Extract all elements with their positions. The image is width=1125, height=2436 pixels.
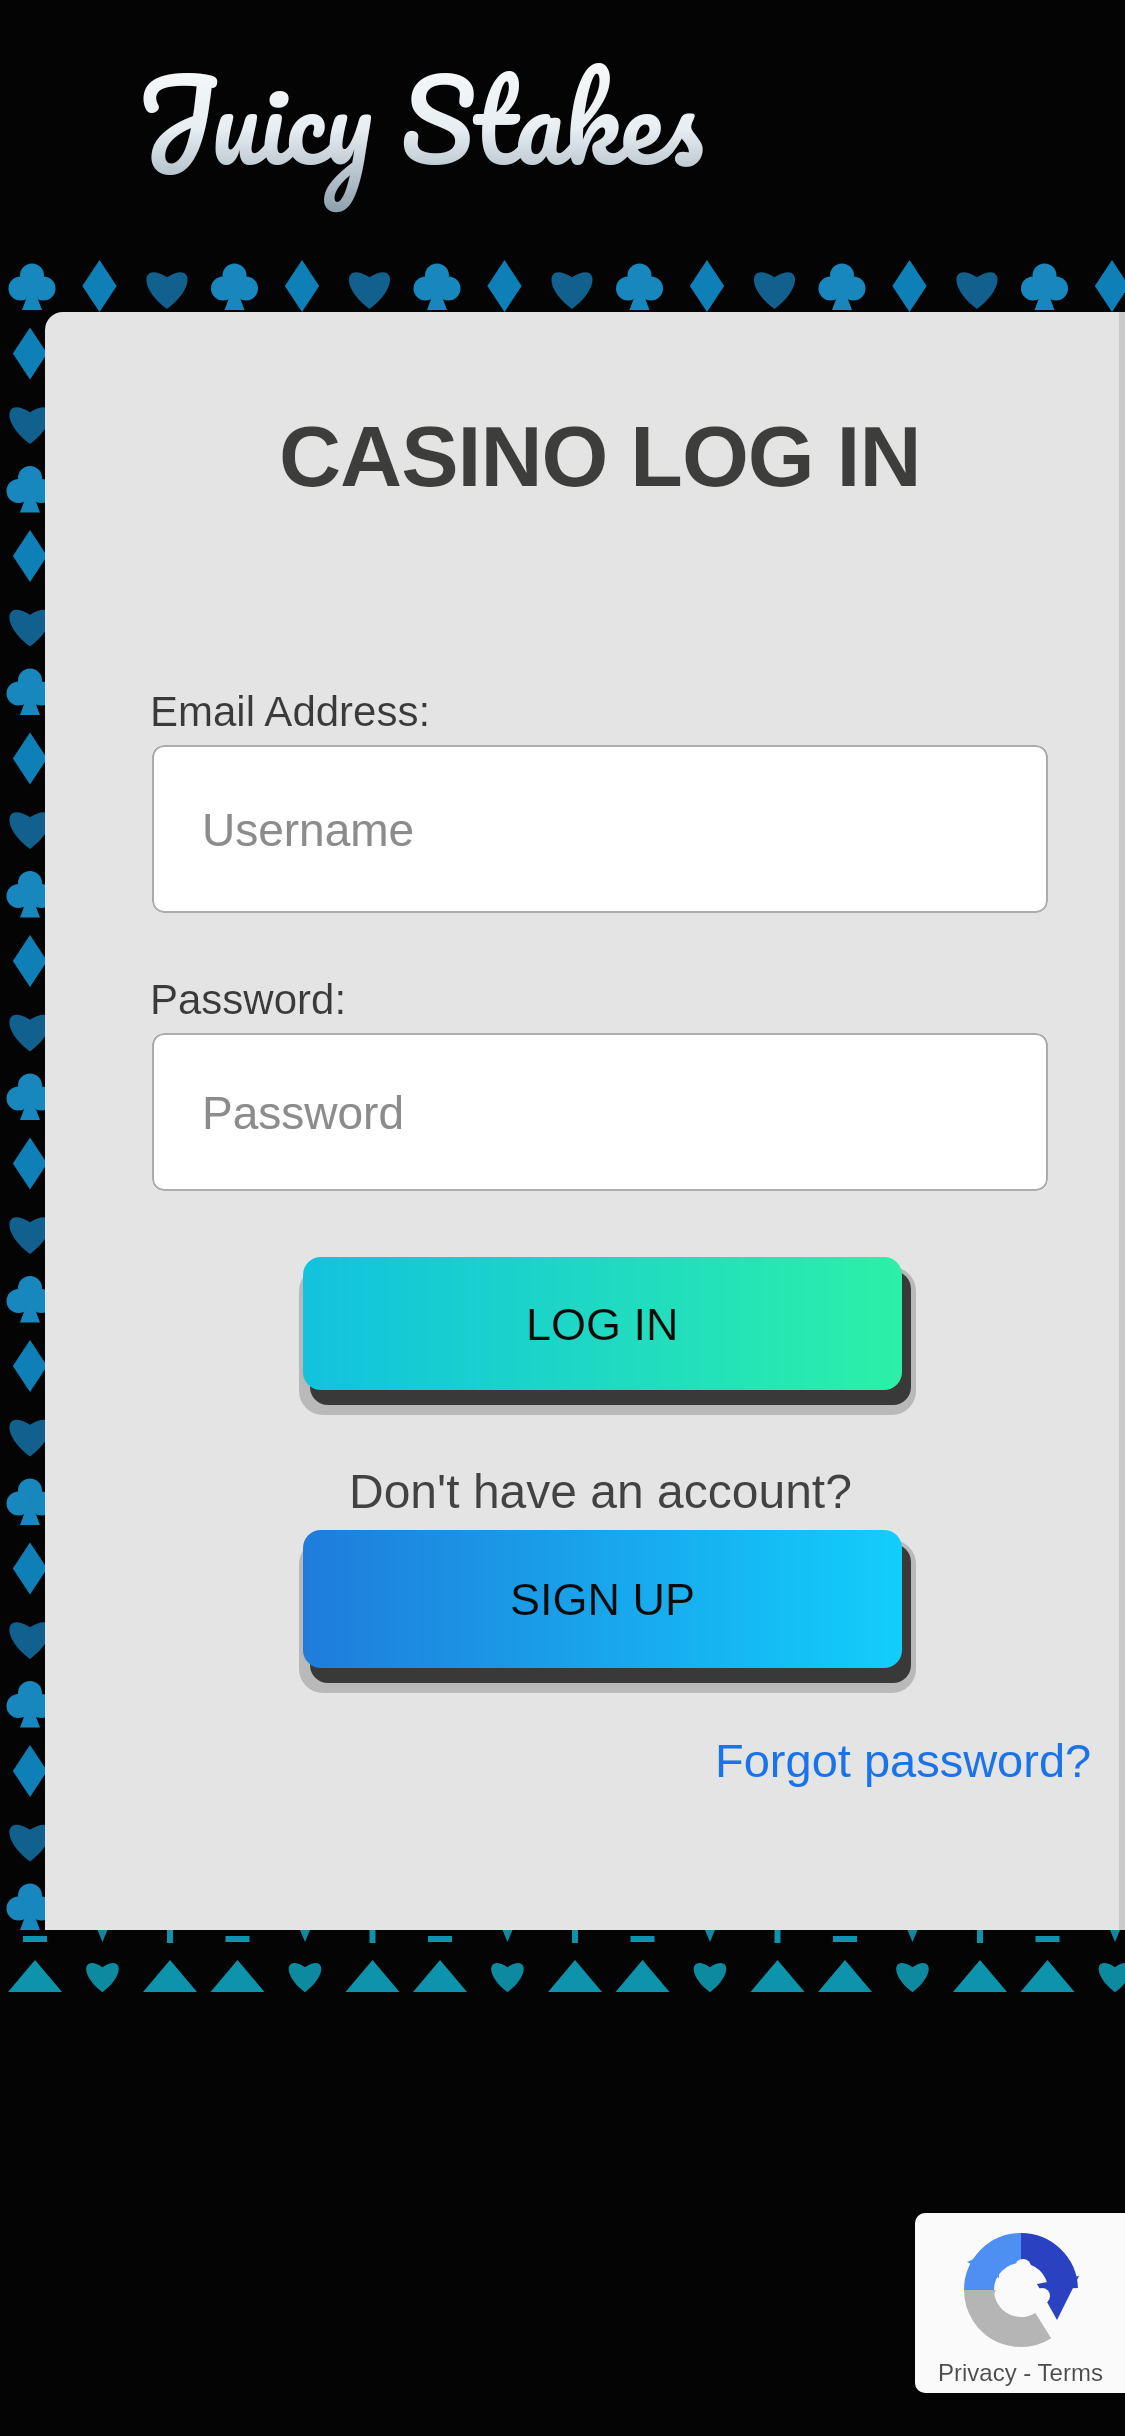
button[interactable]: Password <box>152 1033 1048 1191</box>
button[interactable]: Forgot password? <box>715 1734 1092 1787</box>
staticText: SIGN UP <box>510 1574 696 1624</box>
staticText: Don't have an account? <box>349 1465 852 1519</box>
staticText: Privacy - Terms <box>938 2359 1103 2386</box>
staticText: Password: <box>150 976 347 1023</box>
button[interactable]: Privacy - Terms <box>915 2213 1125 2393</box>
staticText: LOG IN <box>526 1299 679 1349</box>
button[interactable]: Username <box>152 745 1048 913</box>
staticText: Username <box>202 804 415 855</box>
button[interactable]: SIGN UP <box>303 1530 902 1668</box>
staticText: Email Address: <box>150 688 431 735</box>
staticText: Juicy Stakes <box>136 26 704 212</box>
button[interactable]: LOG IN <box>303 1257 902 1390</box>
staticText: Password <box>202 1087 404 1138</box>
staticText: CASINO LOG IN <box>279 408 921 504</box>
